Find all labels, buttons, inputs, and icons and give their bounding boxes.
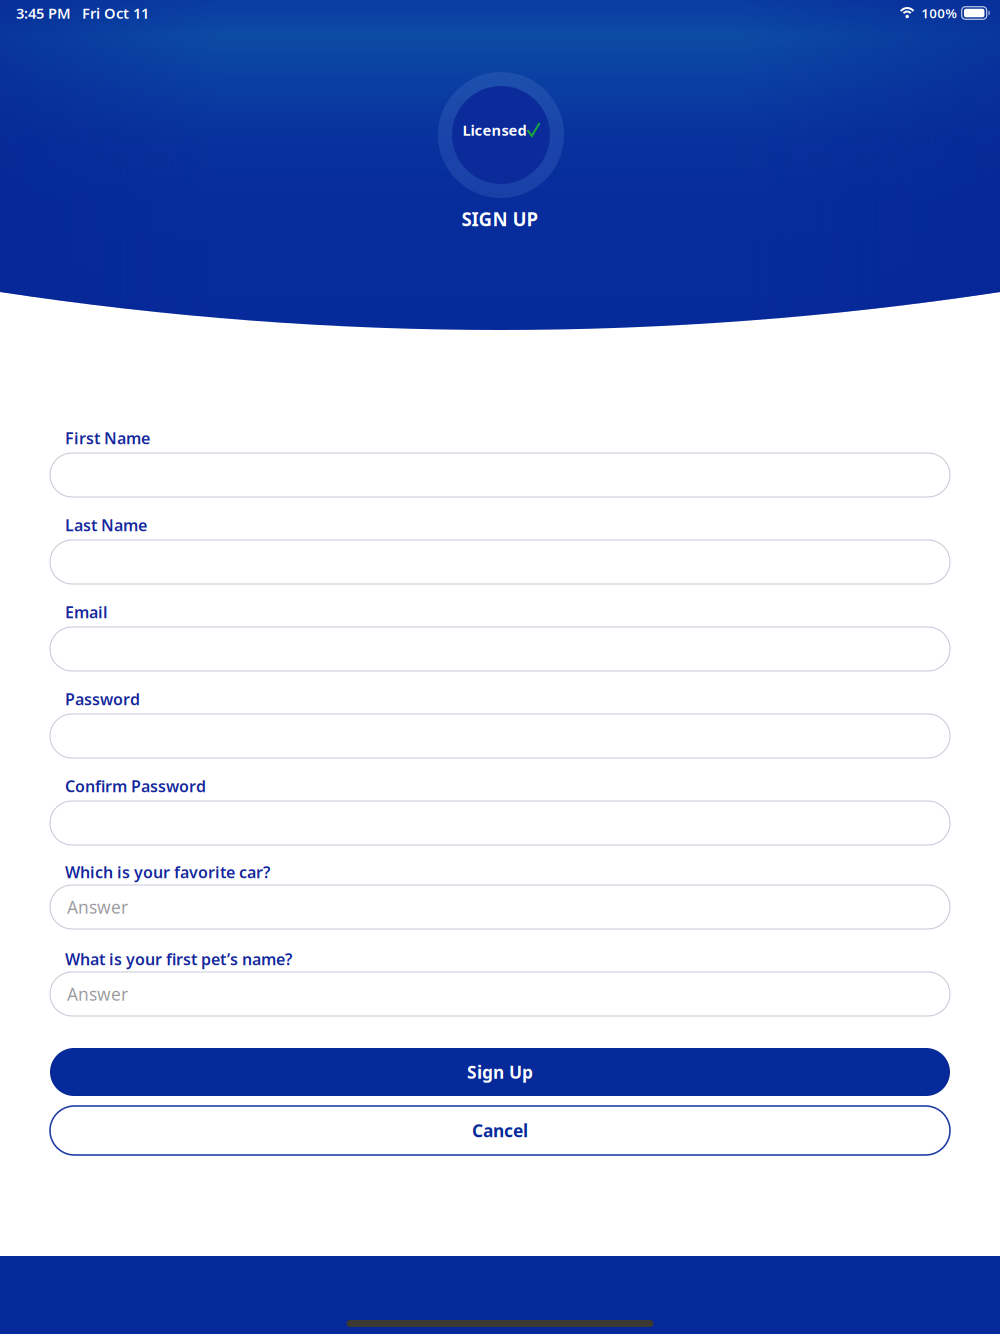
button[interactable]: Which is your favorite car? (50, 885, 950, 929)
button[interactable]: Confirm Password (50, 801, 950, 845)
staticText: Answer (67, 895, 128, 918)
staticText: Email (65, 601, 108, 623)
staticText: Confirm Password (65, 775, 206, 797)
staticText: Password (65, 688, 140, 710)
staticText: 100% (921, 4, 957, 22)
staticText: Fri Oct 11 (82, 3, 149, 23)
button[interactable]: Email (50, 627, 950, 671)
staticText: Cancel (472, 1119, 528, 1142)
staticText: First Name (65, 427, 150, 449)
staticText: What is your first pet’s name? (65, 948, 292, 970)
button[interactable]: Password (50, 714, 950, 758)
staticText: Which is your favorite car? (65, 861, 270, 883)
staticText: 3:45 PM (16, 3, 71, 23)
staticText: SIGN UP (461, 207, 538, 231)
staticText: Licensed (462, 120, 526, 140)
button[interactable]: Sign Up (50, 1048, 950, 1096)
staticText: Sign Up (467, 1060, 533, 1083)
staticText: Answer (67, 982, 128, 1005)
button[interactable]: Cancel (50, 1106, 950, 1155)
button[interactable]: First Name (50, 453, 950, 497)
button[interactable]: Last Name (50, 540, 950, 584)
button[interactable]: What is your first pet’s name? (50, 972, 950, 1016)
staticText: Last Name (65, 514, 147, 536)
